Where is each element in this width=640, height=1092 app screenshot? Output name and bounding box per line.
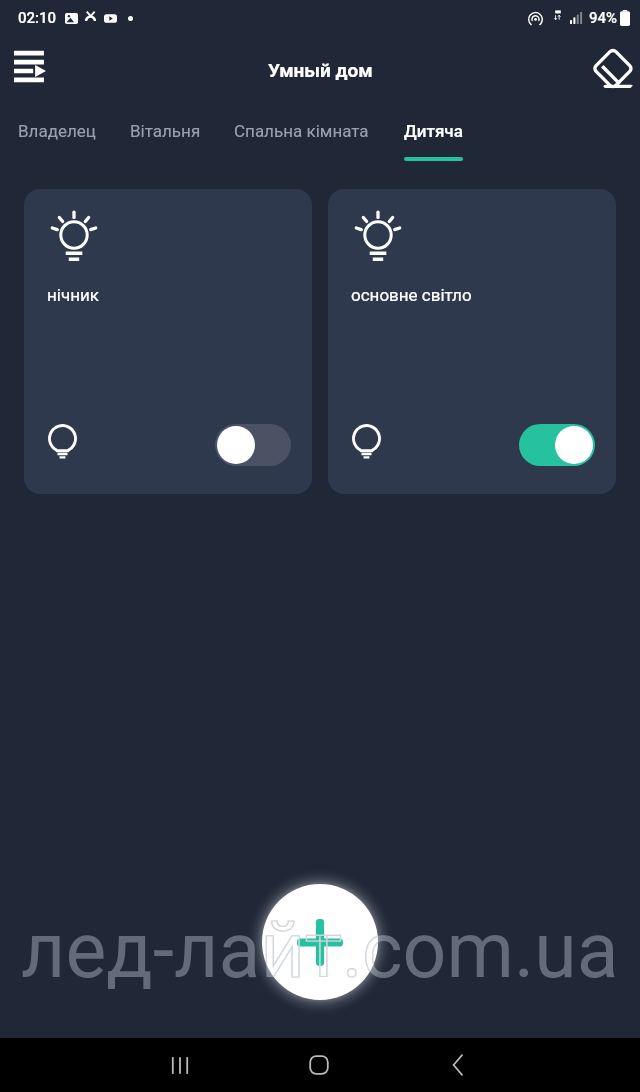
button[interactable]: Erase bbox=[583, 40, 639, 96]
button[interactable]: Дитяча bbox=[386, 105, 481, 161]
button[interactable]: Turn on bbox=[215, 424, 291, 466]
staticText: Спальна кімната bbox=[234, 121, 369, 141]
button[interactable]: Add device bbox=[262, 884, 378, 1000]
button[interactable]: Владелец bbox=[0, 105, 114, 161]
button[interactable]: нічник bbox=[24, 189, 312, 494]
button[interactable]: Turn off bbox=[519, 424, 595, 466]
button[interactable]: Вітальня bbox=[112, 105, 219, 161]
staticText: нічник bbox=[47, 285, 99, 305]
button[interactable]: Recents bbox=[152, 1038, 208, 1092]
button[interactable]: основне світло bbox=[328, 189, 616, 494]
staticText: Владелец bbox=[18, 121, 96, 141]
staticText: 02:10 bbox=[18, 9, 57, 27]
button[interactable]: Menu bbox=[2, 38, 58, 94]
button[interactable]: Спальна кімната bbox=[216, 105, 387, 161]
staticText: Умный дом bbox=[268, 59, 373, 81]
staticText: Дитяча bbox=[404, 121, 463, 141]
button[interactable]: Back bbox=[429, 1038, 485, 1092]
staticText: Вітальня bbox=[130, 121, 201, 141]
staticText: 94% bbox=[589, 9, 618, 27]
staticText: основне світло bbox=[351, 285, 472, 305]
button[interactable]: Home bbox=[291, 1038, 347, 1092]
